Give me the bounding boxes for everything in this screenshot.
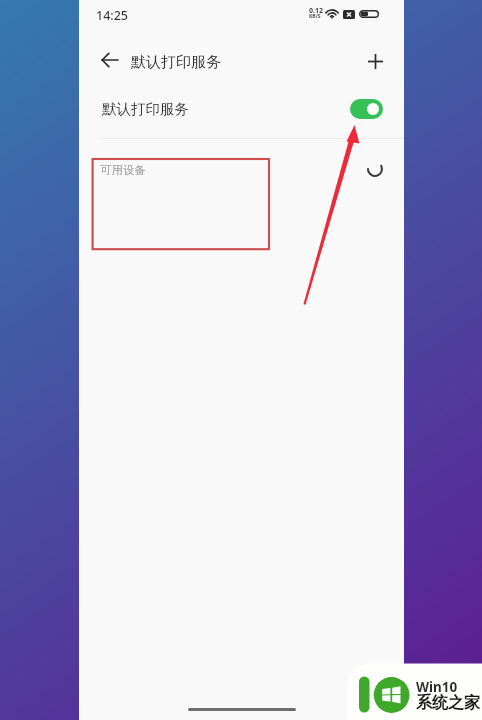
staticText: KB/S <box>309 13 321 20</box>
staticText: 系统之家 <box>416 693 480 713</box>
staticText: 0.12 <box>309 6 323 16</box>
staticText: 默认打印服务 <box>102 100 189 118</box>
button[interactable]: Back <box>93 44 125 76</box>
button[interactable]: 默认打印服务 <box>79 79 404 138</box>
staticText: Win10 <box>416 678 458 696</box>
staticText: 默认打印服务 <box>131 53 221 72</box>
staticText: 14:25 <box>96 7 129 24</box>
button[interactable]: Add <box>359 45 391 77</box>
staticText: 可用设备 <box>100 163 146 177</box>
